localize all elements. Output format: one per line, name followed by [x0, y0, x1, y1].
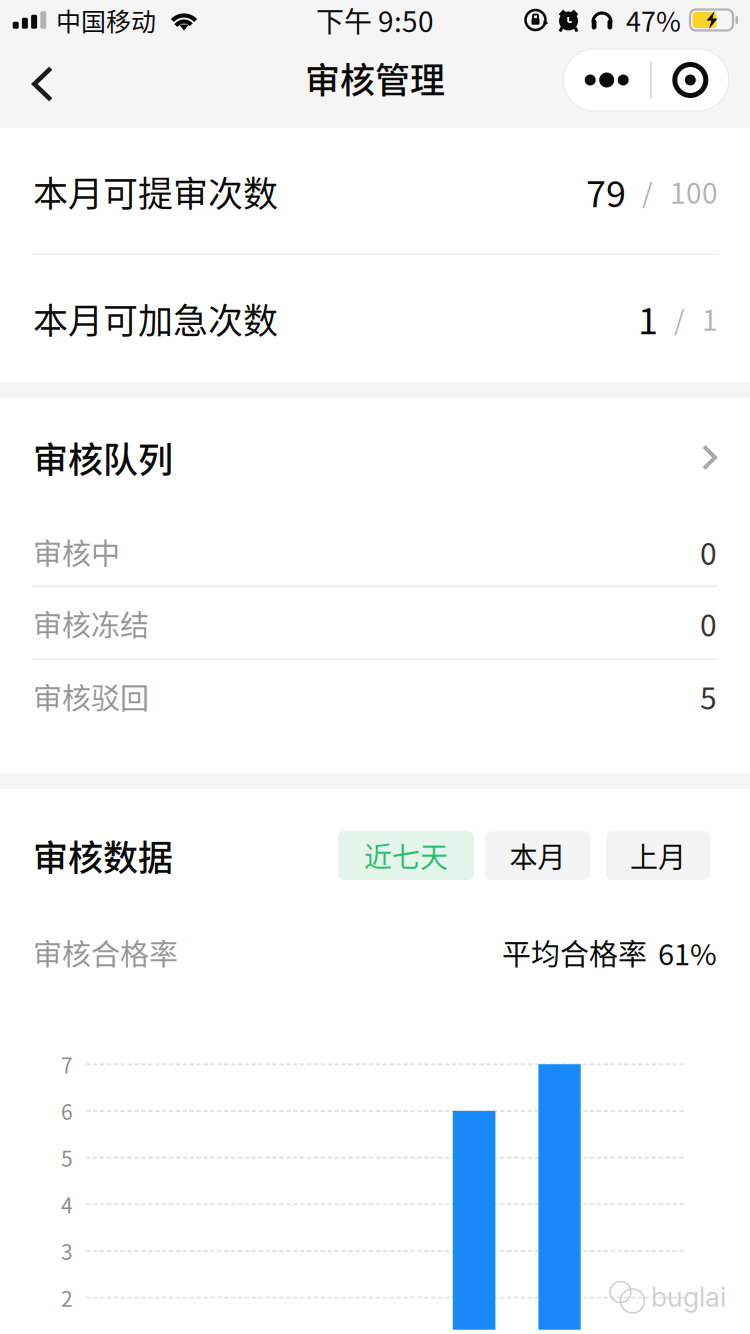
staticText: 本月可加急次数 — [33, 293, 278, 344]
staticText: 下午 9:50 — [316, 0, 434, 40]
button[interactable]: 本月可提审次数 — [0, 128, 750, 255]
staticText: 6 — [61, 1096, 73, 1126]
staticText: 61% — [658, 931, 717, 973]
staticText: 47% — [626, 0, 681, 40]
button[interactable]: 审核中 — [0, 517, 750, 587]
button[interactable]: 审核队列 — [0, 398, 750, 517]
staticText: 中国移动 — [56, 2, 156, 38]
button[interactable]: More options and close — [563, 49, 729, 111]
button[interactable]: 本月可加急次数 — [0, 255, 750, 382]
staticText: 审核数据 — [33, 830, 173, 881]
staticText: 100 — [670, 171, 718, 212]
staticText: 79 — [586, 165, 626, 217]
button[interactable]: 本月 — [485, 831, 590, 880]
staticText: buglai — [651, 1281, 726, 1313]
staticText: / — [642, 172, 653, 211]
staticText: 平均合格率 — [502, 931, 647, 973]
staticText: 3 — [61, 1236, 73, 1266]
staticText: 审核队列 — [33, 432, 173, 483]
staticText: 上月 — [630, 835, 686, 876]
staticText: 1 — [702, 298, 718, 339]
staticText: 5 — [61, 1142, 73, 1173]
staticText: 审核冻结 — [33, 602, 149, 644]
button[interactable]: 审核驳回 — [0, 660, 750, 733]
staticText: 0 — [700, 530, 717, 574]
staticText: 审核中 — [33, 531, 120, 573]
staticText: 本月可提审次数 — [33, 166, 278, 217]
staticText: 审核驳回 — [33, 675, 149, 717]
staticText: 近七天 — [364, 835, 448, 876]
staticText: / — [674, 299, 685, 338]
staticText: 本月 — [509, 835, 565, 876]
staticText: 5 — [700, 675, 717, 718]
button[interactable]: Back — [0, 40, 53, 128]
staticText: 4 — [61, 1189, 73, 1219]
staticText: 审核管理 — [305, 53, 445, 103]
button[interactable]: 上月 — [606, 831, 710, 880]
button[interactable]: 审核冻结 — [0, 587, 750, 660]
staticText: 1 — [638, 292, 658, 344]
button[interactable]: 近七天 — [338, 831, 474, 880]
staticText: 0 — [700, 602, 717, 645]
staticText: 7 — [61, 1049, 73, 1079]
staticText: 2 — [61, 1282, 73, 1313]
staticText: 审核合格率 — [33, 931, 178, 973]
